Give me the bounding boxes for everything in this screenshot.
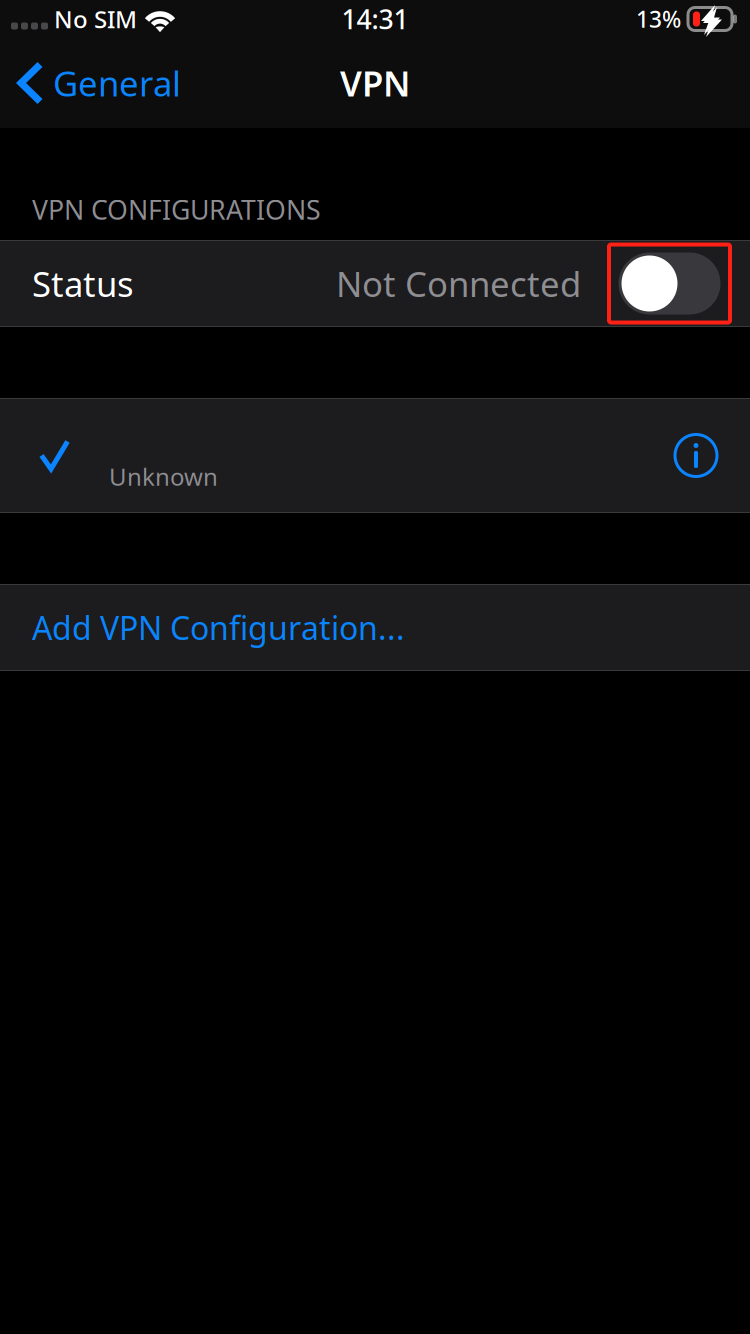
button[interactable]: General <box>0 48 195 128</box>
staticText: Not Connected <box>336 260 581 306</box>
staticText: VPN <box>340 60 410 106</box>
staticText: Status <box>32 260 134 306</box>
staticText: 13% <box>636 4 681 34</box>
button[interactable]: Status <box>0 241 750 326</box>
staticText: 14:31 <box>341 1 408 37</box>
staticText: General <box>53 60 181 106</box>
staticText: Unknown <box>109 461 218 492</box>
button[interactable]: Add VPN Configuration... <box>0 585 750 670</box>
staticText: No SIM <box>54 3 137 35</box>
staticText: VPN CONFIGURATIONS <box>32 192 321 227</box>
button[interactable]: Unknown <box>0 399 750 512</box>
staticText: Add VPN Configuration... <box>32 606 405 649</box>
